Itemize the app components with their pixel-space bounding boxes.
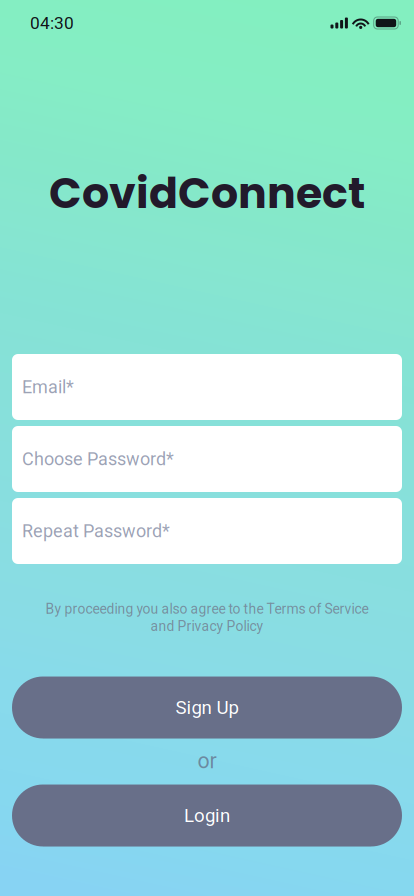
button[interactable]: Sign Up: [12, 676, 402, 738]
staticText: Email*: [22, 376, 74, 398]
button[interactable]: Repeat Password*: [12, 498, 402, 564]
button[interactable]: By proceeding you also agree to the Term…: [45, 601, 368, 634]
staticText: CovidConnect: [49, 163, 365, 223]
button[interactable]: Email*: [12, 354, 402, 420]
button[interactable]: Login: [12, 784, 402, 846]
staticText: and Privacy Policy: [150, 618, 263, 635]
staticText: 04:30: [30, 13, 74, 33]
staticText: Sign Up: [175, 697, 238, 718]
staticText: By proceeding you also agree to the Term…: [45, 601, 368, 617]
staticText: Repeat Password*: [22, 520, 170, 542]
staticText: Choose Password*: [22, 448, 174, 470]
button[interactable]: Choose Password*: [12, 426, 402, 492]
staticText: or: [197, 748, 216, 773]
staticText: Login: [184, 805, 230, 826]
